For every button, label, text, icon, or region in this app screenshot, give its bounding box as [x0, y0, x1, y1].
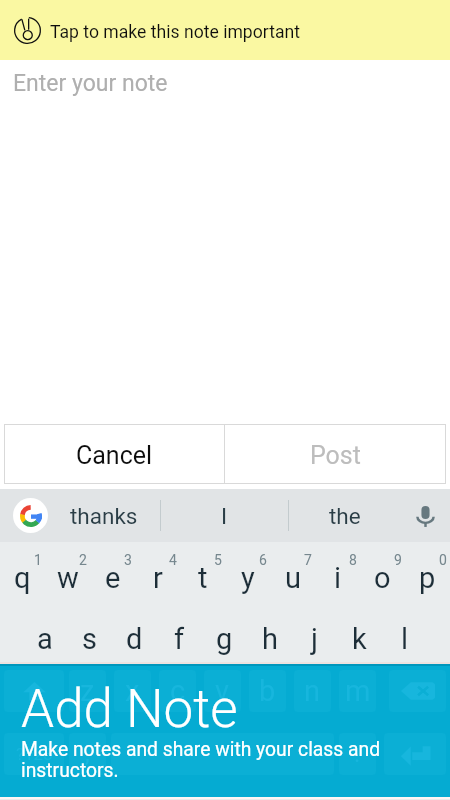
- staticText: z: [80, 674, 95, 708]
- staticText: Add Note: [21, 678, 238, 740]
- button[interactable]: Post: [225, 424, 446, 484]
- button[interactable]: z: [69, 670, 106, 712]
- button[interactable]: Symbols: [4, 733, 64, 775]
- button[interactable]: Google: [13, 498, 48, 533]
- staticText: g: [216, 622, 233, 656]
- button[interactable]: z: [0, 664, 450, 797]
- staticText: ?123: [16, 744, 53, 764]
- button[interactable]: m: [339, 670, 376, 712]
- button[interactable]: b: [249, 670, 286, 712]
- staticText: 5: [214, 552, 222, 568]
- button[interactable]: ,: [69, 733, 106, 775]
- staticText: thanks: [70, 503, 138, 529]
- button[interactable]: a: [22, 608, 67, 669]
- button[interactable]: c: [159, 670, 196, 712]
- button[interactable]: w: [45, 542, 90, 605]
- button[interactable]: l: [382, 608, 427, 669]
- button[interactable]: b: [249, 670, 286, 712]
- staticText: x: [125, 674, 140, 708]
- button[interactable]: .: [339, 733, 376, 775]
- button[interactable]: h: [247, 608, 292, 669]
- staticText: u: [285, 561, 301, 595]
- button[interactable]: Space: [111, 733, 334, 775]
- staticText: r: [153, 561, 163, 595]
- staticText: f: [174, 622, 185, 656]
- staticText: m: [345, 674, 371, 708]
- staticText: 9: [394, 552, 402, 568]
- button[interactable]: e: [90, 542, 135, 605]
- staticText: a: [37, 622, 53, 656]
- staticText: j: [311, 622, 318, 656]
- staticText: 4: [169, 552, 177, 568]
- staticText: e: [105, 561, 121, 595]
- staticText: z: [80, 674, 95, 708]
- staticText: 7: [304, 552, 312, 568]
- staticText: 6: [259, 552, 267, 568]
- staticText: Cancel: [76, 441, 153, 470]
- button[interactable]: x: [114, 670, 151, 712]
- button[interactable]: [389, 670, 446, 712]
- button[interactable]: [384, 733, 446, 775]
- staticText: i: [334, 561, 342, 595]
- staticText: d: [126, 622, 143, 656]
- staticText: Enter your note: [13, 70, 168, 97]
- button[interactable]: t: [180, 542, 225, 605]
- button[interactable]: Voice input: [406, 497, 444, 535]
- staticText: I: [221, 503, 228, 529]
- button[interactable]: v: [204, 670, 241, 712]
- button[interactable]: j: [292, 608, 337, 669]
- button[interactable]: i: [315, 542, 360, 605]
- button[interactable]: thanks: [48, 489, 160, 542]
- staticText: the: [329, 503, 361, 529]
- button[interactable]: u: [270, 542, 315, 605]
- button[interactable]: ,: [69, 733, 106, 775]
- button[interactable]: v: [204, 670, 241, 712]
- staticText: x: [125, 674, 140, 708]
- button[interactable]: I: [161, 489, 288, 542]
- staticText: 0: [439, 552, 447, 568]
- staticText: 1: [34, 552, 42, 568]
- staticText: s: [82, 622, 97, 656]
- button[interactable]: Backspace: [389, 670, 446, 712]
- staticText: l: [401, 622, 409, 656]
- staticText: .: [354, 740, 361, 768]
- button[interactable]: Shift: [4, 670, 64, 712]
- staticText: k: [352, 622, 367, 656]
- staticText: n: [304, 674, 321, 708]
- button[interactable]: o: [360, 542, 405, 605]
- staticText: n: [304, 674, 321, 708]
- button[interactable]: x: [114, 670, 151, 712]
- staticText: y: [241, 561, 255, 595]
- button[interactable]: ?123: [4, 733, 64, 775]
- button[interactable]: c: [159, 670, 196, 712]
- button[interactable]: z: [69, 670, 106, 712]
- staticText: ,: [85, 740, 90, 768]
- button[interactable]: r: [135, 542, 180, 605]
- button[interactable]: Enter: [384, 733, 446, 775]
- button[interactable]: m: [339, 670, 376, 712]
- staticText: 3: [124, 552, 132, 568]
- button[interactable]: [111, 733, 334, 775]
- staticText: ,: [85, 740, 90, 768]
- button[interactable]: [4, 670, 64, 712]
- staticText: ?123: [16, 744, 53, 764]
- button[interactable]: .: [339, 733, 376, 775]
- staticText: h: [262, 622, 278, 656]
- button[interactable]: d: [112, 608, 157, 669]
- button[interactable]: y: [225, 542, 270, 605]
- staticText: Post: [310, 441, 361, 470]
- button[interactable]: the: [289, 489, 400, 542]
- button[interactable]: s: [67, 608, 112, 669]
- button[interactable]: Tap to make this note important: [0, 0, 450, 60]
- button[interactable]: g: [202, 608, 247, 669]
- staticText: .: [354, 740, 361, 768]
- button[interactable]: k: [337, 608, 382, 669]
- button[interactable]: Cancel: [4, 424, 224, 484]
- button[interactable]: f: [157, 608, 202, 669]
- button[interactable]: p: [405, 542, 450, 605]
- staticText: v: [215, 674, 230, 708]
- button[interactable]: q: [0, 542, 45, 605]
- staticText: c: [170, 674, 186, 708]
